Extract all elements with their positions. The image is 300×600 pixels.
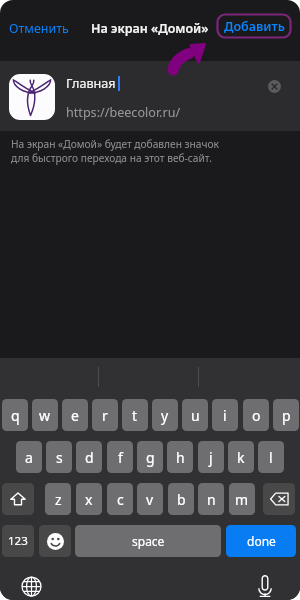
staticText: f: [118, 448, 123, 467]
button[interactable]: Отменить: [5, 17, 73, 40]
staticText: j: [209, 448, 213, 467]
staticText: g: [146, 448, 155, 467]
staticText: k: [237, 448, 245, 467]
staticText: done: [247, 533, 276, 549]
button[interactable]: v: [137, 483, 163, 515]
button[interactable]: d: [76, 441, 102, 473]
staticText: v: [146, 490, 154, 509]
staticText: e: [71, 406, 79, 425]
staticText: На экран «Домой» будет добавлен значок: [11, 137, 219, 151]
staticText: q: [11, 406, 20, 425]
button[interactable]: q: [2, 399, 28, 431]
staticText: b: [177, 490, 186, 509]
button[interactable]: 123: [2, 525, 34, 557]
staticText: t: [132, 406, 138, 425]
button[interactable]: p: [273, 399, 299, 431]
staticText: для быстрого перехода на этот веб-сайт.: [11, 151, 212, 165]
staticText: https://beecolor.ru/: [66, 104, 181, 121]
staticText: Главная: [66, 75, 116, 92]
staticText: 123: [8, 533, 28, 549]
button[interactable]: n: [198, 483, 224, 515]
staticText: d: [85, 448, 94, 467]
button[interactable]: g: [137, 441, 163, 473]
staticText: y: [161, 406, 169, 425]
staticText: Добавить: [224, 18, 285, 35]
staticText: m: [235, 490, 249, 509]
staticText: На экран «Домой»: [91, 20, 209, 37]
staticText: r: [102, 406, 108, 425]
button[interactable]: h: [167, 441, 193, 473]
button[interactable]: l: [258, 441, 284, 473]
staticText: p: [282, 406, 291, 425]
button[interactable]: x: [76, 483, 102, 515]
button[interactable]: o: [243, 399, 269, 431]
button[interactable]: r: [92, 399, 118, 431]
button[interactable]: f: [107, 441, 133, 473]
button[interactable]: b: [168, 483, 194, 515]
button[interactable]: i: [212, 399, 238, 431]
button[interactable]: Shift: [2, 483, 34, 515]
button[interactable]: space: [75, 525, 221, 557]
staticText: l: [269, 448, 273, 467]
staticText: o: [252, 406, 261, 425]
button[interactable]: Emoji: [39, 525, 71, 557]
button[interactable]: t: [122, 399, 148, 431]
button[interactable]: Clear text: [262, 74, 286, 98]
button[interactable]: z: [45, 483, 71, 515]
button[interactable]: w: [32, 399, 58, 431]
button[interactable]: done: [226, 525, 296, 557]
button[interactable]: u: [182, 399, 208, 431]
staticText: h: [176, 448, 185, 467]
staticText: space: [132, 533, 165, 549]
staticText: s: [56, 448, 63, 467]
button[interactable]: Backspace: [263, 483, 295, 515]
button[interactable]: y: [152, 399, 178, 431]
staticText: z: [55, 490, 62, 509]
staticText: w: [39, 406, 51, 425]
staticText: u: [191, 406, 200, 425]
button[interactable]: c: [107, 483, 133, 515]
button[interactable]: e: [62, 399, 88, 431]
button[interactable]: Dictate: [253, 574, 277, 598]
button[interactable]: j: [198, 441, 224, 473]
button[interactable]: a: [16, 441, 42, 473]
button[interactable]: Change keyboard: [19, 574, 43, 598]
staticText: n: [207, 490, 216, 509]
button[interactable]: s: [46, 441, 72, 473]
button[interactable]: k: [228, 441, 254, 473]
button[interactable]: Добавить: [217, 14, 291, 38]
staticText: x: [85, 490, 93, 509]
button[interactable]: m: [229, 483, 255, 515]
staticText: Отменить: [9, 20, 69, 37]
staticText: a: [25, 448, 33, 467]
staticText: c: [117, 490, 124, 509]
staticText: i: [223, 406, 227, 425]
